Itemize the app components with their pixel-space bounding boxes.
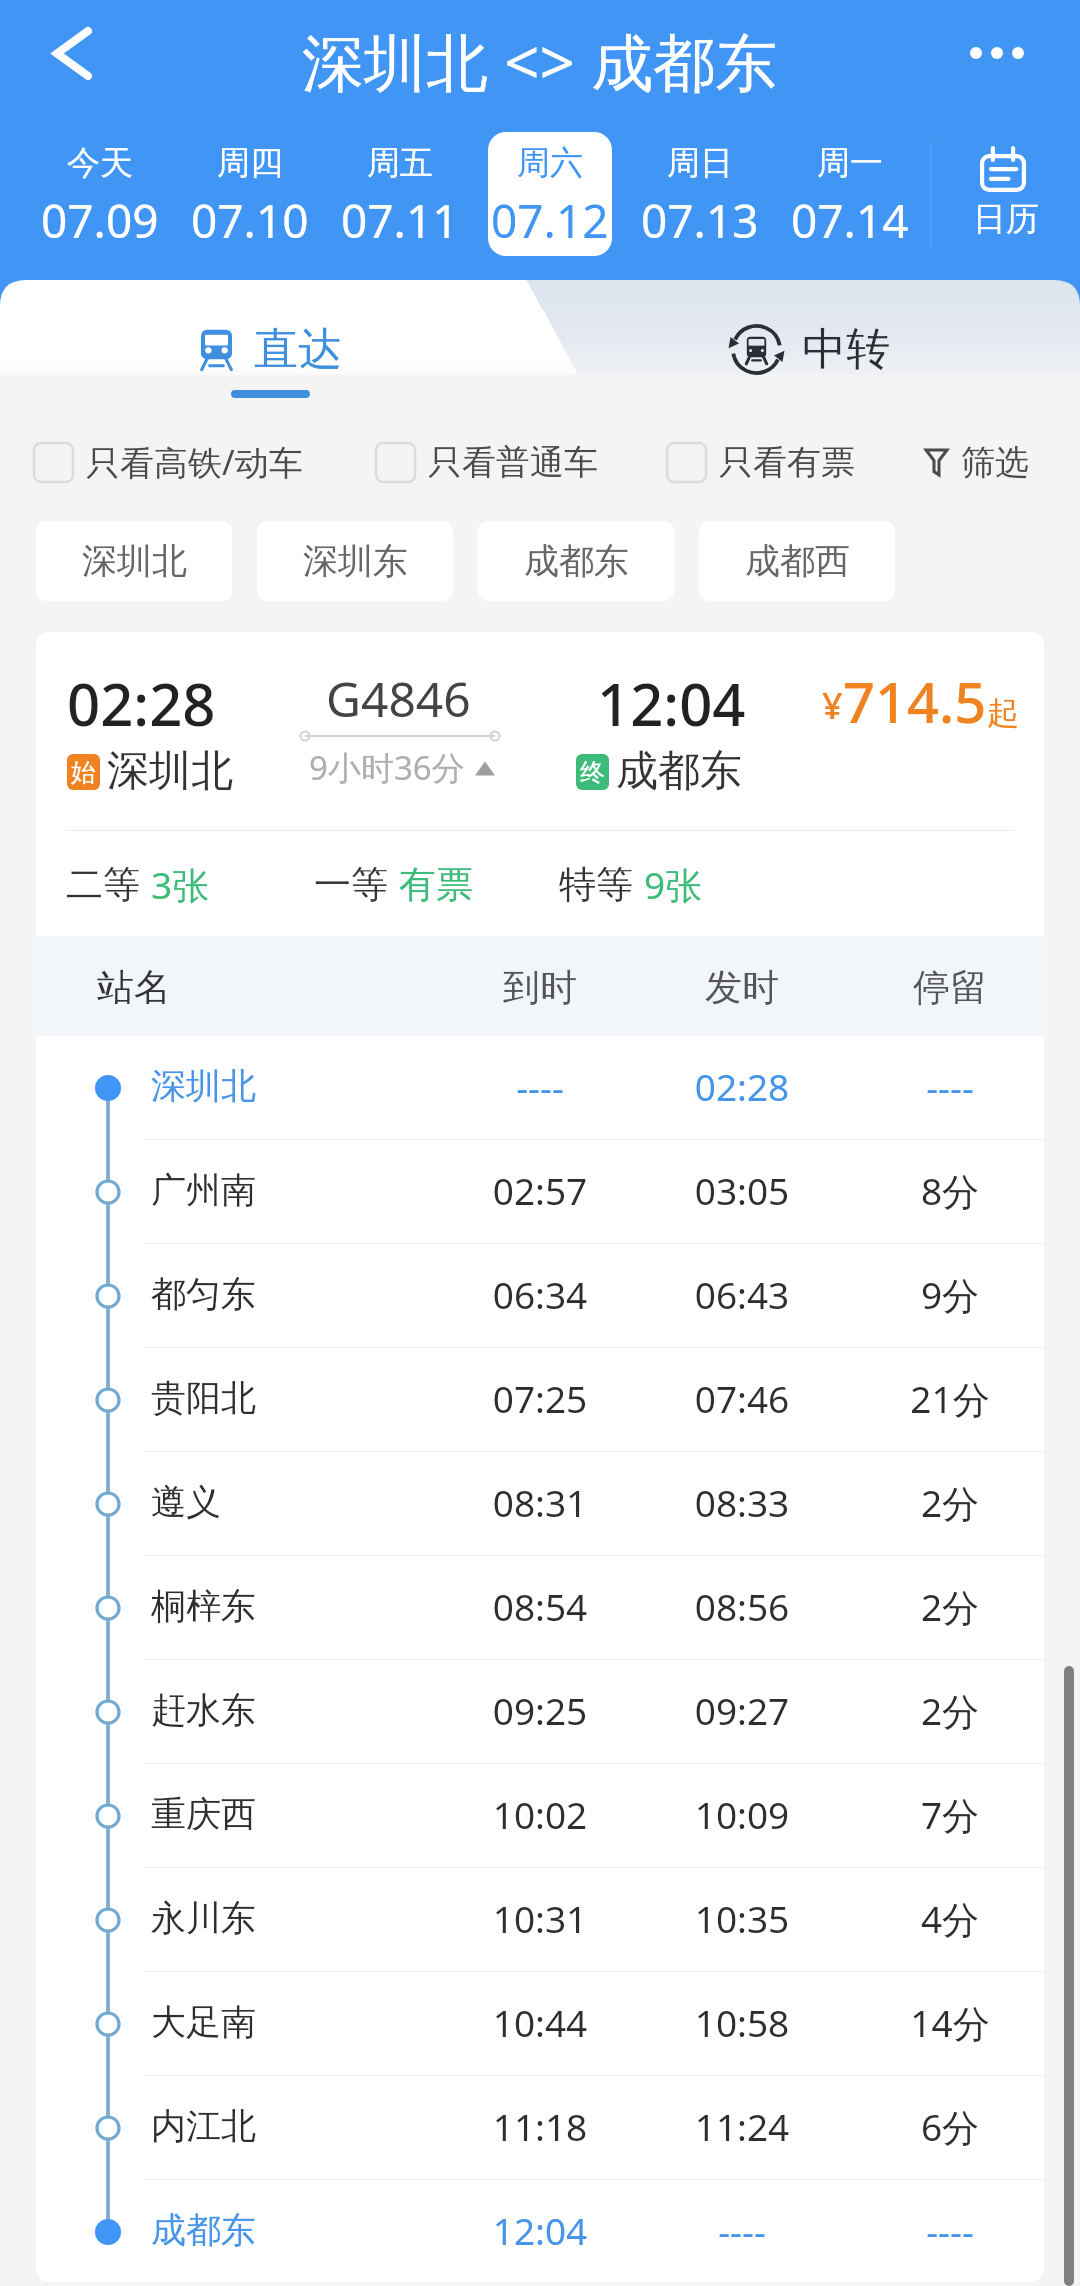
staticText: 成都东 bbox=[616, 745, 742, 798]
staticText: 07.10 bbox=[191, 189, 309, 252]
button[interactable]: Back bbox=[26, 7, 118, 99]
staticText: 10:35 bbox=[662, 1893, 822, 1943]
staticText: 桐梓东 bbox=[151, 1584, 256, 1628]
staticText: 8分 bbox=[870, 1165, 1030, 1216]
button[interactable]: More options bbox=[952, 7, 1042, 97]
staticText: 3张 bbox=[151, 859, 210, 910]
staticText: 21分 bbox=[870, 1373, 1030, 1424]
staticText: 10:58 bbox=[662, 1997, 822, 2047]
button[interactable]: 筛选 bbox=[924, 434, 1029, 490]
staticText: 大足南 bbox=[151, 2000, 256, 2044]
staticText: 07.09 bbox=[41, 189, 159, 252]
staticText: 二等 bbox=[66, 861, 140, 908]
button[interactable]: 深圳东 bbox=[257, 521, 453, 601]
button[interactable]: G4846 深圳北 02:28 到 成都东 12:04 ¥714.5起 bbox=[36, 632, 1044, 830]
button[interactable]: 成都东 bbox=[478, 521, 674, 601]
button[interactable]: 遵义 bbox=[36, 1452, 1044, 1556]
staticText: 9张 bbox=[644, 859, 703, 910]
staticText: 08:56 bbox=[662, 1581, 822, 1631]
button[interactable]: 成都西 bbox=[699, 521, 895, 601]
staticText: 站名 bbox=[97, 964, 171, 1011]
staticText: 深圳北 bbox=[82, 539, 187, 583]
button[interactable]: 赶水东 bbox=[36, 1660, 1044, 1764]
button[interactable]: 大足南 bbox=[36, 1972, 1044, 2076]
staticText: 11:24 bbox=[662, 2101, 822, 2151]
staticText: 06:34 bbox=[460, 1269, 620, 1319]
staticText: 成都东 bbox=[151, 2208, 256, 2252]
staticText: 714.5 bbox=[843, 663, 987, 739]
staticText: 周四 bbox=[217, 142, 283, 184]
staticText: 筛选 bbox=[961, 441, 1029, 484]
staticText: 有票 bbox=[399, 861, 473, 908]
button[interactable]: 桐梓东 bbox=[36, 1556, 1044, 1660]
staticText: 12:04 bbox=[597, 664, 746, 743]
staticText: 2分 bbox=[870, 1477, 1030, 1528]
staticText: 07:25 bbox=[460, 1373, 620, 1423]
staticText: 02:28 bbox=[67, 664, 216, 743]
staticText: 10:02 bbox=[460, 1789, 620, 1839]
button[interactable]: 周五 bbox=[338, 132, 462, 256]
button[interactable]: 深圳北 bbox=[36, 1036, 1044, 1140]
staticText: 永川东 bbox=[151, 1896, 256, 1940]
staticText: 只看高铁/动车 bbox=[86, 439, 303, 485]
staticText: 中转 bbox=[802, 322, 890, 377]
staticText: 6分 bbox=[870, 2101, 1030, 2152]
staticText: 08:31 bbox=[460, 1477, 620, 1527]
button[interactable]: 只看有票 bbox=[667, 436, 855, 488]
staticText: 一等 bbox=[314, 861, 388, 908]
button[interactable]: 周六 bbox=[488, 132, 612, 256]
staticText: 11:18 bbox=[460, 2101, 620, 2151]
staticText: 深圳北 bbox=[107, 745, 233, 798]
staticText: 02:57 bbox=[460, 1165, 620, 1215]
button[interactable]: 今天 bbox=[38, 132, 162, 256]
button[interactable]: 只看高铁/动车 bbox=[34, 436, 303, 488]
button[interactable]: 贵阳北 bbox=[36, 1348, 1044, 1452]
staticText: 贵阳北 bbox=[151, 1376, 256, 1420]
staticText: 特等 bbox=[559, 861, 633, 908]
button[interactable]: 广州南 bbox=[36, 1140, 1044, 1244]
staticText: 07.12 bbox=[491, 189, 609, 252]
staticText: 2分 bbox=[870, 1581, 1030, 1632]
staticText: ---- bbox=[460, 1061, 620, 1111]
button[interactable]: 永川东 bbox=[36, 1868, 1044, 1972]
staticText: 09:25 bbox=[460, 1685, 620, 1735]
staticText: 07.11 bbox=[341, 189, 459, 252]
staticText: 停留 bbox=[870, 964, 1030, 1011]
staticText: 成都西 bbox=[745, 539, 850, 583]
button[interactable]: 中转 bbox=[690, 302, 930, 397]
staticText: 今天 bbox=[67, 142, 133, 184]
button[interactable]: 重庆西 bbox=[36, 1764, 1044, 1868]
staticText: 日历 bbox=[973, 198, 1039, 240]
staticText: 到时 bbox=[460, 964, 620, 1011]
staticText: 14分 bbox=[870, 1997, 1030, 2048]
staticText: 成都东 bbox=[524, 539, 629, 583]
button[interactable]: Calendar bbox=[946, 130, 1066, 256]
button[interactable]: 只看普通车 bbox=[376, 436, 598, 488]
button[interactable]: 成都东 bbox=[36, 2180, 1044, 2282]
staticText: G4846 bbox=[326, 666, 471, 731]
staticText: 10:44 bbox=[460, 1997, 620, 2047]
button[interactable]: 都匀东 bbox=[36, 1244, 1044, 1348]
staticText: 08:54 bbox=[460, 1581, 620, 1631]
button[interactable]: 周一 bbox=[788, 132, 912, 256]
staticText: 08:33 bbox=[662, 1477, 822, 1527]
staticText: 07:46 bbox=[662, 1373, 822, 1423]
button[interactable]: 直达 bbox=[150, 302, 390, 397]
staticText: 10:31 bbox=[460, 1893, 620, 1943]
staticText: 赶水东 bbox=[151, 1688, 256, 1732]
button[interactable]: 内江北 bbox=[36, 2076, 1044, 2180]
staticText: 只看有票 bbox=[719, 441, 855, 484]
staticText: 7分 bbox=[870, 1789, 1030, 1840]
staticText: 始 bbox=[71, 757, 96, 788]
button[interactable]: 周四 bbox=[188, 132, 312, 256]
staticText: 02:28 bbox=[662, 1061, 822, 1111]
button[interactable]: 深圳北 bbox=[36, 521, 232, 601]
staticText: 只看普通车 bbox=[428, 441, 598, 484]
staticText: 遵义 bbox=[151, 1480, 221, 1524]
button[interactable]: 周日 bbox=[638, 132, 762, 256]
staticText: 发时 bbox=[662, 964, 822, 1011]
staticText: 09:27 bbox=[662, 1685, 822, 1735]
staticText: 9小时36分 bbox=[309, 745, 465, 790]
staticText: 周六 bbox=[517, 142, 583, 184]
staticText: 起 bbox=[987, 693, 1019, 733]
